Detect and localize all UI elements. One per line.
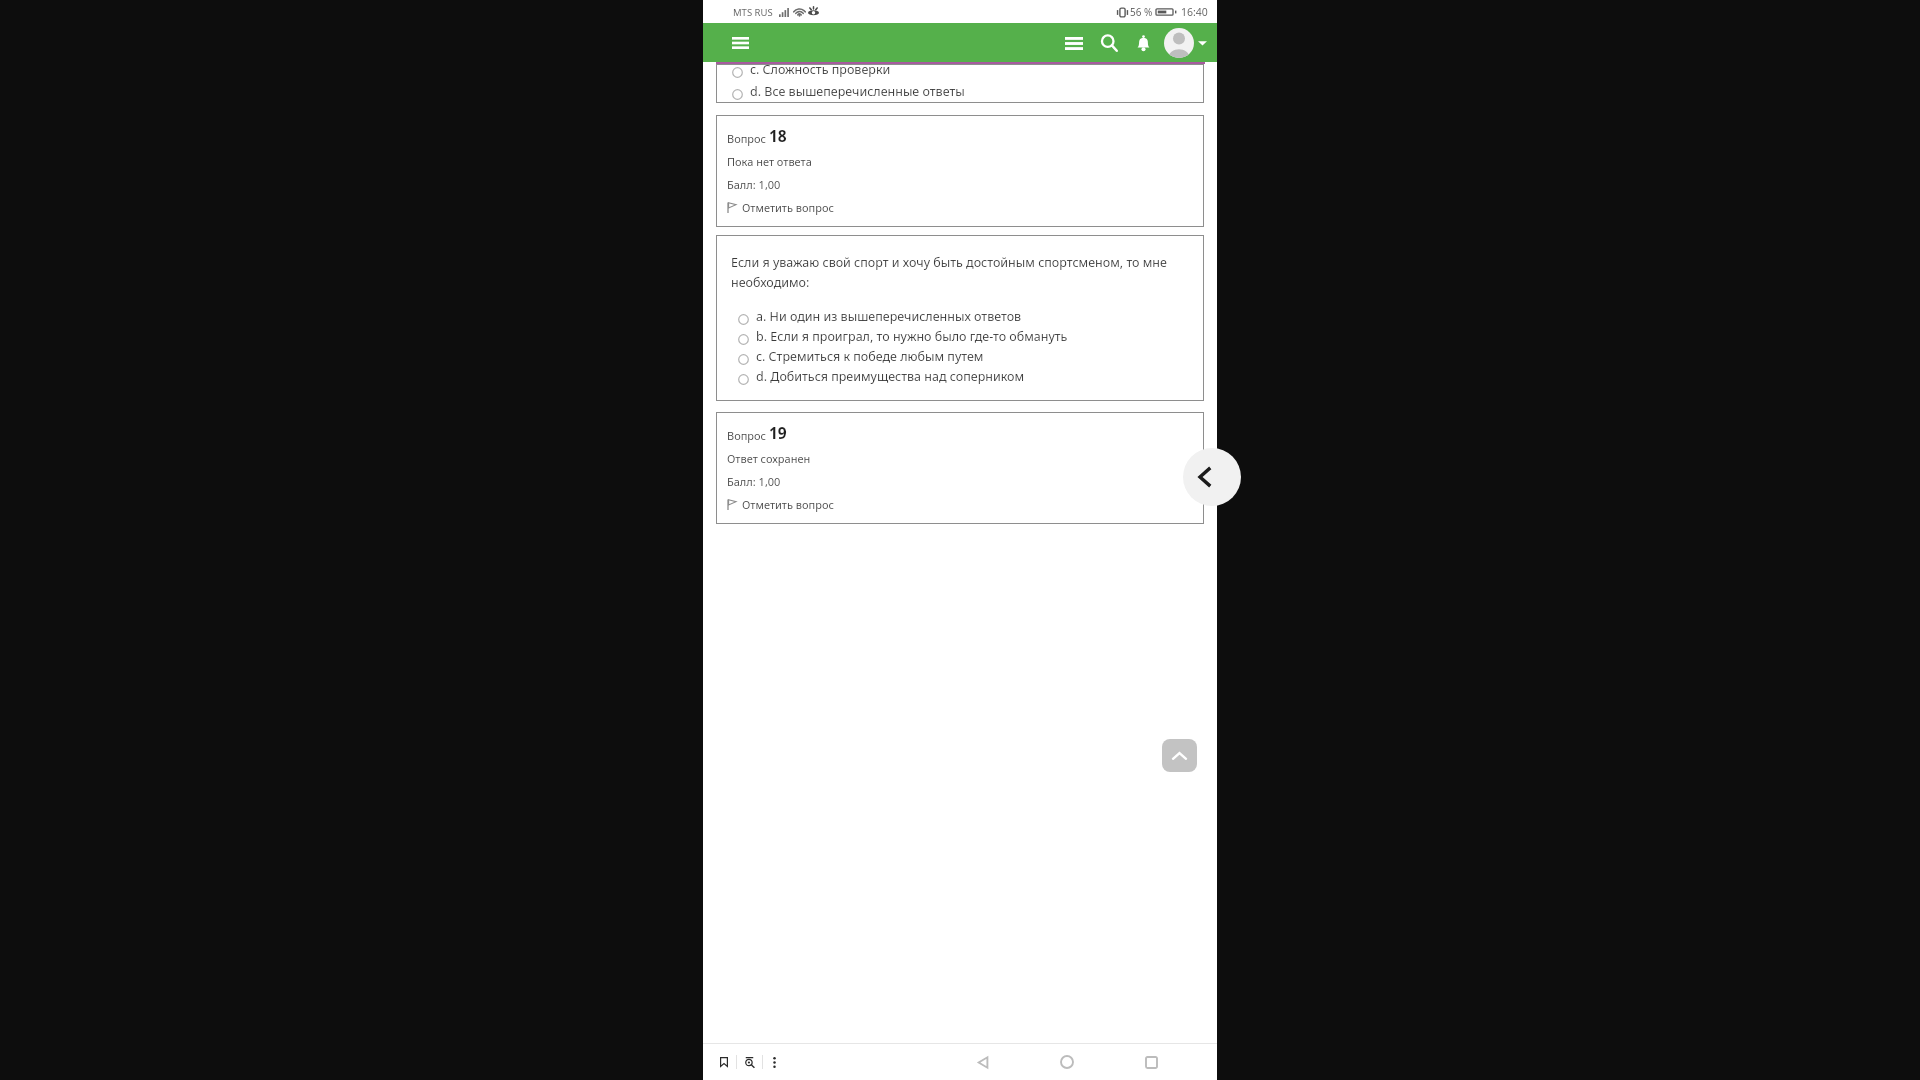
- button[interactable]: c. Сложность проверки: [732, 61, 1204, 78]
- button[interactable]: b. Если я проиграл, то нужно было где-то…: [738, 328, 1190, 345]
- button[interactable]: Отметить вопрос: [727, 497, 834, 512]
- button[interactable]: Open menu: [725, 28, 755, 58]
- button[interactable]: d. Добиться преимущества над соперником: [738, 368, 1190, 385]
- staticText: d. Добиться преимущества над соперником: [756, 368, 1025, 385]
- staticText: b. Если я проиграл, то нужно было где-то…: [756, 328, 1068, 345]
- staticText: 56 %: [1130, 5, 1153, 19]
- button[interactable]: Notifications: [1126, 26, 1160, 60]
- button[interactable]: Account menu: [1161, 28, 1210, 58]
- button[interactable]: Home: [1049, 1044, 1085, 1080]
- staticText: 19: [769, 422, 787, 443]
- staticText: Балл: 1,00: [727, 474, 781, 489]
- staticText: Если я уважаю свой спорт и хочу быть дос…: [731, 254, 1190, 291]
- staticText: Пока нет ответа: [727, 154, 812, 169]
- staticText: 16:40: [1181, 5, 1208, 19]
- staticText: MTS RUS: [733, 6, 773, 19]
- staticText: a. Ни один из вышеперечисленных ответов: [756, 308, 1022, 325]
- button[interactable]: Navigation drawer: [1056, 25, 1092, 61]
- button[interactable]: Google Lens: [737, 1051, 762, 1073]
- button[interactable]: Search: [1092, 26, 1126, 60]
- button[interactable]: Previous page: [1183, 448, 1241, 506]
- button[interactable]: c. Стремиться к победе любым путем: [738, 348, 1190, 365]
- staticText: Вопрос: [727, 428, 769, 443]
- staticText: d. Все вышеперечисленные ответы: [750, 83, 965, 100]
- staticText: Вопрос: [727, 131, 769, 146]
- button[interactable]: Scroll to top: [1162, 739, 1197, 772]
- staticText: Балл: 1,00: [727, 177, 781, 192]
- button[interactable]: a. Ни один из вышеперечисленных ответов: [738, 308, 1190, 325]
- button[interactable]: d. Все вышеперечисленные ответы: [732, 83, 1204, 100]
- staticText: 18: [769, 125, 787, 146]
- button[interactable]: Back: [965, 1044, 1001, 1080]
- staticText: Отметить вопрос: [742, 200, 834, 215]
- staticText: c. Стремиться к победе любым путем: [756, 348, 984, 365]
- button[interactable]: Recent apps: [1133, 1044, 1169, 1080]
- button[interactable]: Bookmark: [711, 1051, 736, 1073]
- button[interactable]: Отметить вопрос: [727, 200, 834, 215]
- staticText: c. Сложность проверки: [750, 61, 891, 78]
- staticText: Ответ сохранен: [727, 451, 811, 466]
- staticText: Отметить вопрос: [742, 497, 834, 512]
- button[interactable]: More options: [763, 1051, 786, 1073]
